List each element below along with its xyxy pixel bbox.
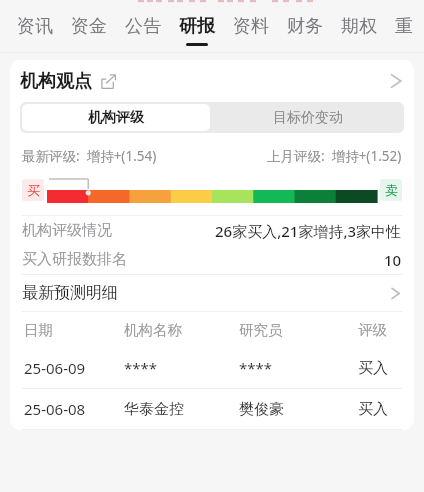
staticText: 研究员 [239,321,283,339]
button[interactable]: 25-06-09 [10,348,414,388]
staticText: 樊俊豪 [239,400,284,419]
staticText: 最新评级: 增持+(1.54) [22,147,157,165]
staticText: 买入研报数排名 [22,250,127,269]
button[interactable]: 研报 [170,5,224,53]
staticText: 目标价变动 [273,109,343,127]
staticText: 买入 [358,359,388,378]
staticText: 资金 [71,15,107,38]
button[interactable]: 25-06-08 [10,389,414,429]
staticText: 机构评级情况 [22,221,112,240]
staticText: 25-06-08 [24,399,86,419]
staticText: 卖 [385,182,398,198]
staticText: 26家买入,21家增持,3家中性 [215,221,402,241]
staticText: 买 [27,182,40,198]
staticText: 10 [384,250,402,270]
staticText: 研报 [179,15,215,38]
staticText: 华泰金控 [124,400,184,419]
button[interactable]: 资料 [224,5,278,53]
button[interactable]: 财务 [278,5,332,53]
staticText: 机构观点 [20,70,92,93]
staticText: **** [239,358,273,378]
staticText: 买入 [358,400,388,419]
staticText: 25-06-09 [24,358,86,378]
staticText: 期权 [341,15,377,38]
button[interactable]: 资讯 [8,5,62,53]
staticText: 最新预测明细 [22,283,118,303]
staticText: 机构名称 [124,321,182,339]
button[interactable]: 期权 [332,5,386,53]
staticText: 资讯 [17,15,53,38]
button[interactable]: 目标价变动 [212,102,404,133]
button[interactable]: 公告 [116,5,170,53]
staticText: 资料 [233,15,269,38]
staticText: 公告 [125,15,161,38]
button[interactable]: 重 [386,5,422,53]
staticText: 日期 [24,321,53,339]
button[interactable]: 买入研报数排名 [10,245,414,274]
staticText: 财务 [287,15,323,38]
staticText: 重 [395,15,413,38]
staticText: 机构评级 [88,109,144,127]
button[interactable]: 资金 [62,5,116,53]
button[interactable]: 机构评级 [22,104,210,131]
staticText: **** [124,358,158,378]
button[interactable]: 机构观点 [10,60,414,102]
staticText: 上月评级: 增持+(1.52) [267,147,402,165]
button[interactable]: 机构评级情况 [10,216,414,245]
button[interactable]: 最新预测明细 [10,275,414,311]
button[interactable]: 分享 [101,74,116,89]
staticText: 评级 [358,321,387,339]
